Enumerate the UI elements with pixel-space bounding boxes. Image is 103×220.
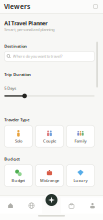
staticText: Smart, personalized planning (4, 27, 54, 32)
staticText: Where do you want to travel? (13, 54, 63, 59)
button[interactable]: Budget (4, 165, 32, 187)
button[interactable]: Trips (61, 198, 82, 214)
button[interactable]: Explore (21, 198, 42, 214)
button[interactable]: Home (0, 198, 21, 214)
button[interactable]: Luxury (66, 165, 95, 187)
button[interactable]: Share (91, 2, 100, 11)
staticText: Budget (4, 156, 20, 161)
staticText: Mid-range (40, 178, 59, 183)
staticText: Budget (11, 178, 25, 183)
staticText: AI Travel Planner (4, 20, 47, 27)
button[interactable]: Solo (4, 125, 32, 147)
button[interactable]: Where do you want to travel? (4, 51, 95, 61)
staticText: Couple (43, 138, 56, 144)
staticText: Trip Duration (4, 72, 31, 77)
staticText: Viewers (4, 2, 30, 11)
button[interactable]: Couple (35, 125, 63, 147)
staticText: Traveler Type (4, 117, 29, 122)
staticText: Solo (15, 138, 22, 144)
staticText: Family (74, 138, 86, 144)
staticText: Destination (4, 43, 27, 49)
button[interactable]: Mid-range (35, 165, 63, 187)
button[interactable]: Family (66, 125, 95, 147)
button[interactable]: Profile (82, 198, 103, 214)
staticText: 5 Days (4, 86, 16, 91)
button[interactable]: Plan with AI (43, 191, 60, 208)
staticText: Luxury (73, 178, 87, 183)
